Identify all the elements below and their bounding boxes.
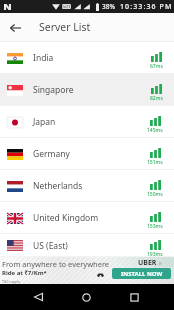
button[interactable]: US (East)	[0, 234, 174, 257]
staticText: United Kingdom	[33, 212, 99, 224]
staticText: US (East)	[33, 240, 68, 252]
button[interactable]: INSTALL NOW	[112, 268, 171, 279]
staticText: 151ms	[147, 159, 163, 166]
button[interactable]: Back	[0, 13, 28, 41]
staticText: 82ms	[150, 95, 163, 102]
staticText: 38%	[102, 2, 115, 11]
staticText: 193ms	[147, 251, 163, 258]
staticText: Japan	[33, 116, 56, 128]
button[interactable]: India	[0, 42, 174, 74]
button[interactable]: Singapore	[0, 74, 174, 106]
staticText: INSTALL NOW	[121, 270, 163, 278]
staticText: From anywhere to everywhere	[2, 259, 110, 269]
button[interactable]: From anywhere to everywhere	[0, 257, 174, 284]
staticText: 10:33:36 PM	[120, 2, 173, 12]
staticText: 150ms	[147, 191, 163, 198]
button[interactable]: Netherlands	[0, 170, 174, 202]
button[interactable]: Home	[74, 285, 98, 309]
staticText: Germany	[33, 148, 70, 160]
staticText: Ride at ₹7/Km*	[2, 269, 47, 277]
staticText: UBER	[138, 258, 157, 268]
button[interactable]: Back	[26, 285, 50, 309]
button[interactable]: Recents	[122, 285, 146, 309]
staticText: 67ms	[150, 63, 163, 70]
button[interactable]: Japan	[0, 106, 174, 138]
staticText: Singapore	[33, 84, 74, 96]
button[interactable]: United Kingdom	[0, 202, 174, 234]
staticText: India	[33, 52, 54, 64]
staticText: 145ms	[147, 127, 163, 134]
staticText: VoLTE	[62, 5, 71, 9]
staticText: Netherlands	[33, 180, 83, 192]
staticText: T&Cs apply	[2, 279, 21, 284]
button[interactable]: Germany	[0, 138, 174, 170]
staticText: Server List	[39, 20, 91, 34]
staticText: 153ms	[147, 223, 163, 230]
